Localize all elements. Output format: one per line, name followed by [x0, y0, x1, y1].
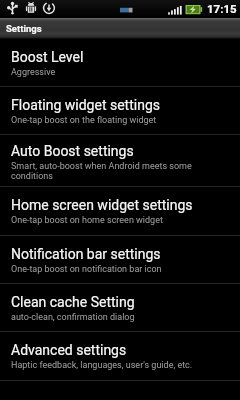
- staticText: Home screen widget settings: [11, 197, 193, 214]
- staticText: One-tap boost on home screen widget: [11, 215, 163, 225]
- staticText: One-tap boost on notification bar icon: [11, 264, 162, 274]
- button[interactable]: Boost Level: [0, 39, 240, 86]
- staticText: Smart, auto-boost when Android meets som…: [11, 161, 226, 181]
- staticText: Advanced settings: [11, 342, 127, 359]
- staticText: Notification bar settings: [11, 246, 161, 263]
- staticText: Auto Boost settings: [11, 143, 134, 160]
- button[interactable]: Settings: [0, 18, 240, 39]
- button[interactable]: Clean cache Setting: [0, 284, 240, 331]
- button[interactable]: Notification bar settings: [0, 236, 240, 283]
- staticText: Settings: [6, 23, 42, 34]
- button[interactable]: Advanced settings: [0, 332, 240, 380]
- button[interactable]: Auto Boost settings: [0, 135, 240, 186]
- staticText: Boost Level: [11, 49, 84, 66]
- staticText: One-tap boost on the floating widget: [11, 115, 157, 125]
- staticText: 17:15: [207, 2, 237, 15]
- staticText: Haptic feedback, languages, user's guide…: [11, 360, 193, 370]
- button[interactable]: Home screen widget settings: [0, 187, 240, 235]
- staticText: auto-clean, confirmation dialog: [11, 312, 135, 322]
- staticText: Clean cache Setting: [11, 294, 135, 311]
- button[interactable]: Floating widget settings: [0, 87, 240, 134]
- staticText: Floating widget settings: [11, 97, 160, 114]
- staticText: Aggressive: [11, 67, 56, 77]
